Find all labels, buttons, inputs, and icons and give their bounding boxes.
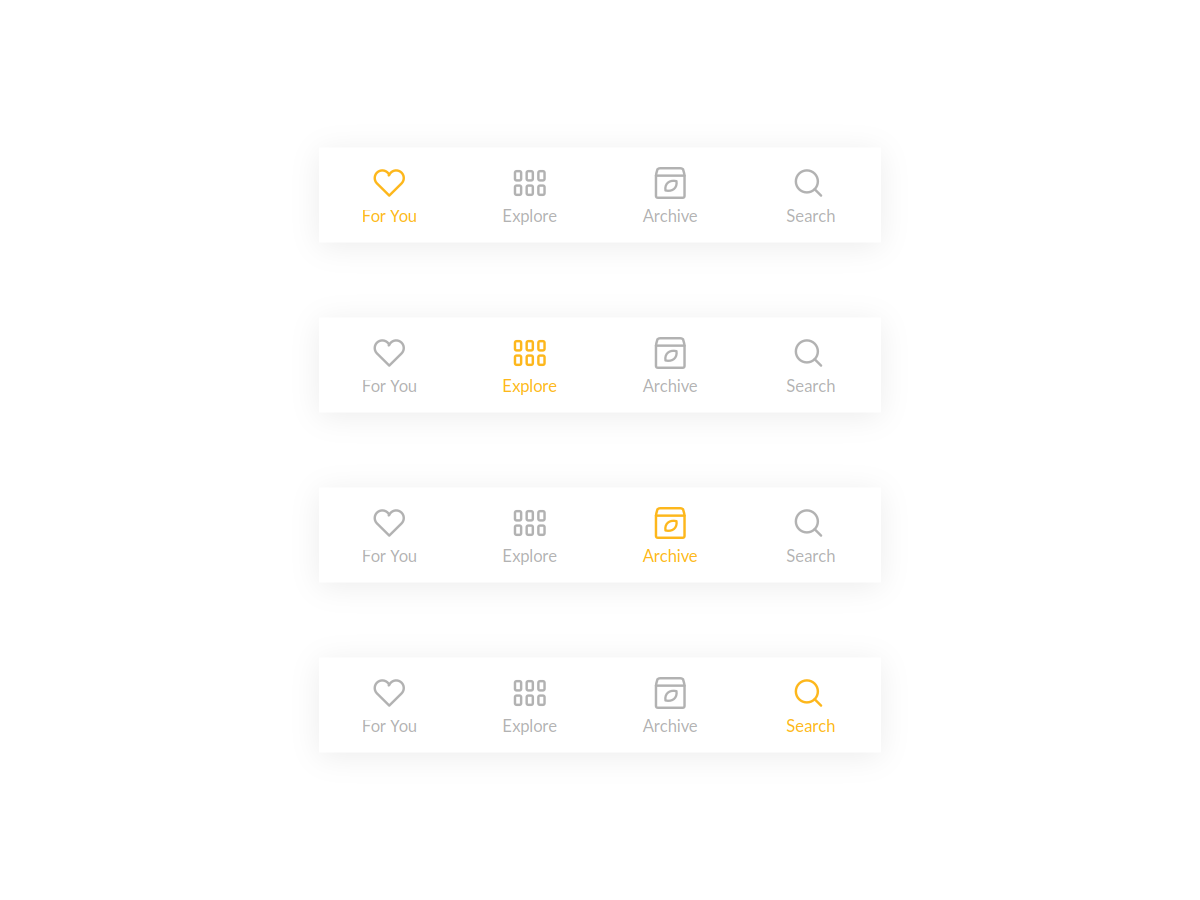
button[interactable]: For You <box>319 487 459 582</box>
button[interactable]: Archive <box>600 147 740 242</box>
staticText: Explore <box>502 375 557 395</box>
button[interactable]: Search <box>740 487 881 582</box>
button[interactable]: Archive <box>600 317 740 412</box>
button[interactable]: Archive <box>600 657 740 752</box>
button[interactable]: Explore <box>459 487 600 582</box>
staticText: Archive <box>643 375 698 395</box>
button[interactable]: Search <box>740 317 881 412</box>
button[interactable]: Explore <box>459 657 600 752</box>
staticText: Explore <box>502 545 557 565</box>
staticText: Explore <box>502 205 557 225</box>
staticText: For You <box>362 205 417 225</box>
staticText: Archive <box>643 715 698 735</box>
staticText: Search <box>786 715 835 735</box>
button[interactable]: For You <box>319 147 459 242</box>
button[interactable]: Search <box>740 657 881 752</box>
staticText: For You <box>362 715 417 735</box>
staticText: Search <box>786 205 835 225</box>
staticText: For You <box>362 375 417 395</box>
button[interactable]: Search <box>740 147 881 242</box>
button[interactable]: Archive <box>600 487 740 582</box>
staticText: Archive <box>643 205 698 225</box>
button[interactable]: Explore <box>459 147 600 242</box>
staticText: Archive <box>643 545 698 565</box>
staticText: For You <box>362 545 417 565</box>
staticText: Search <box>786 545 835 565</box>
button[interactable]: For You <box>319 657 459 752</box>
staticText: Search <box>786 375 835 395</box>
button[interactable]: For You <box>319 317 459 412</box>
button[interactable]: Explore <box>459 317 600 412</box>
staticText: Explore <box>502 715 557 735</box>
